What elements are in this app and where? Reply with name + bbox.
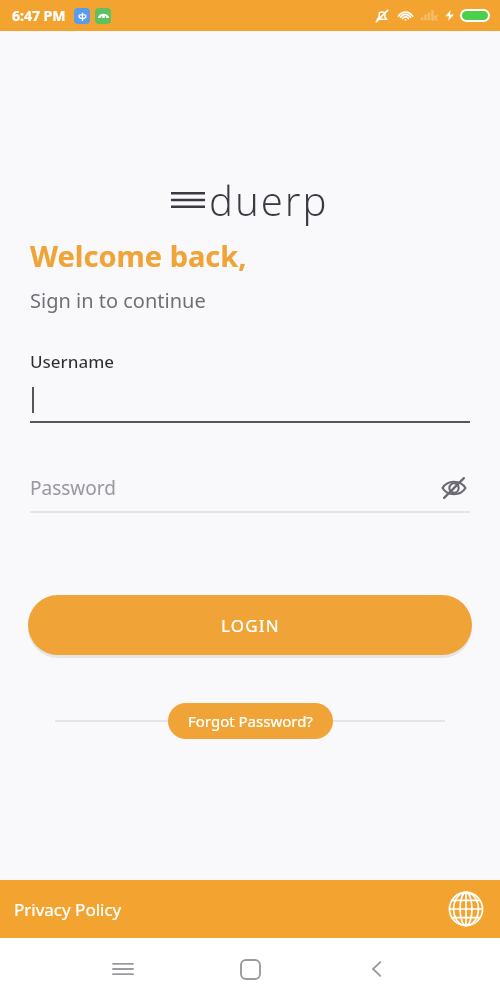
button[interactable]: Recent apps xyxy=(99,945,147,993)
button[interactable]: Password xyxy=(30,471,470,513)
staticText: Forgot Password? xyxy=(188,711,313,731)
staticText: Password xyxy=(30,475,116,501)
staticText: Privacy Policy xyxy=(14,898,122,921)
button[interactable]: LOGIN xyxy=(28,595,472,655)
staticText: LOGIN xyxy=(221,614,280,637)
button[interactable]: Privacy Policy xyxy=(0,892,132,927)
staticText: Sign in to continue xyxy=(30,287,206,314)
staticText: duerp xyxy=(209,173,329,227)
staticText: 6:47 PM xyxy=(12,6,66,25)
button[interactable]: Language xyxy=(444,887,488,931)
staticText: Welcome back, xyxy=(30,236,247,275)
button[interactable]: Show password xyxy=(438,472,470,504)
button[interactable]: Forgot Password? xyxy=(168,703,333,739)
staticText: Username xyxy=(30,350,114,373)
button[interactable] xyxy=(30,381,470,423)
button[interactable]: Home xyxy=(226,945,274,993)
button[interactable]: Back xyxy=(353,945,401,993)
